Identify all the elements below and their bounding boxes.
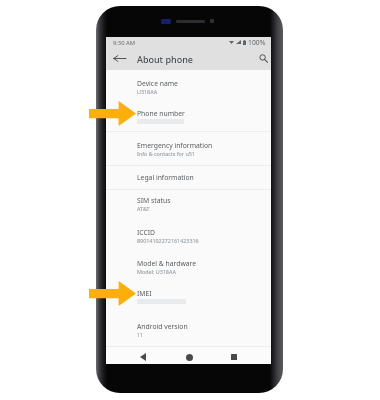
staticText: Model: U318AA: [137, 268, 176, 275]
button[interactable]: Device name: [106, 79, 271, 95]
staticText: Device name: [137, 79, 178, 88]
staticText: ICCID: [137, 228, 156, 237]
staticText: U318AA: [137, 88, 158, 95]
button[interactable]: Model & hardware: [106, 259, 271, 275]
staticText: 11: [137, 331, 144, 338]
button[interactable]: ICCID: [106, 228, 271, 244]
button[interactable]: IMEI: [106, 289, 271, 304]
button[interactable]: Home: [175, 350, 203, 364]
staticText: Emergency information: [137, 141, 213, 150]
staticText: SIM status: [137, 196, 171, 205]
button[interactable]: Search: [255, 51, 271, 66]
staticText: 100%: [248, 38, 266, 46]
staticText: IMEI: [137, 289, 152, 298]
button[interactable]: Back: [129, 350, 157, 364]
button[interactable]: Emergency information: [106, 141, 271, 157]
button[interactable]: Legal information: [106, 173, 271, 182]
staticText: Legal information: [137, 173, 194, 182]
button[interactable]: Back: [107, 50, 132, 67]
staticText: Info & contacts for u51: [137, 150, 195, 157]
staticText: Android version: [137, 322, 188, 331]
button[interactable]: Phone number: [106, 109, 271, 124]
button[interactable]: SIM status: [106, 196, 271, 212]
staticText: Phone number: [137, 109, 185, 118]
staticText: 9:30 AM: [113, 39, 135, 47]
staticText: AT&T: [137, 205, 150, 212]
staticText: About phone: [137, 53, 193, 65]
staticText: Model & hardware: [137, 259, 197, 268]
button[interactable]: Android version: [106, 322, 271, 338]
staticText: 89014102272161423316: [137, 237, 199, 244]
button[interactable]: Recents: [220, 350, 248, 364]
